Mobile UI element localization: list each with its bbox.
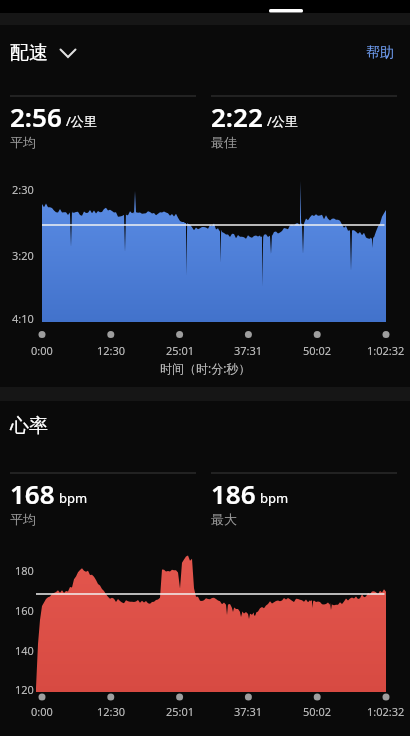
button[interactable]: 帮助 (366, 44, 394, 62)
staticText: 最佳 (211, 134, 237, 150)
staticText: 1:02:32 (367, 343, 405, 358)
staticText: 160 (15, 603, 34, 618)
staticText: 50:02 (303, 343, 332, 358)
staticText: 3:20 (12, 248, 34, 263)
staticText: bpm (260, 489, 289, 507)
staticText: 37:31 (234, 343, 263, 358)
staticText: 2:22 (211, 99, 263, 134)
staticText: 0:00 (31, 343, 53, 358)
staticText: 50:02 (303, 704, 332, 719)
staticText: 37:31 (234, 704, 263, 719)
staticText: 120 (15, 682, 34, 697)
staticText: 168 (10, 476, 55, 511)
staticText: 2:30 (12, 182, 34, 197)
staticText: 12:30 (97, 704, 126, 719)
staticText: 配速 (10, 41, 48, 65)
staticText: 180 (15, 563, 34, 578)
staticText: 4:10 (12, 311, 34, 326)
staticText: 12:30 (97, 343, 126, 358)
button[interactable]: 配速 (10, 41, 80, 65)
staticText: /公里 (267, 112, 298, 130)
staticText: 25:01 (166, 343, 195, 358)
staticText: 平均 (10, 511, 36, 527)
staticText: 186 (211, 476, 256, 511)
staticText: 0:00 (31, 704, 53, 719)
staticText: 最大 (211, 511, 237, 527)
staticText: 1:02:32 (367, 704, 405, 719)
staticText: 帮助 (366, 44, 394, 62)
staticText: 2:56 (10, 99, 62, 134)
staticText: 心率 (10, 414, 48, 438)
staticText: bpm (59, 489, 88, 507)
staticText: 时间（时:分:秒） (160, 360, 251, 376)
staticText: 140 (15, 643, 34, 658)
staticText: /公里 (66, 112, 97, 130)
staticText: 平均 (10, 134, 36, 150)
staticText: 25:01 (166, 704, 195, 719)
